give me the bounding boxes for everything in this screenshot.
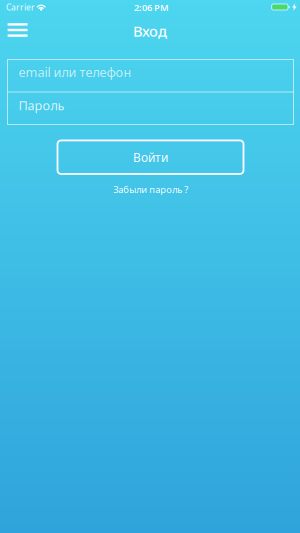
button[interactable]: Пароль bbox=[7, 92, 293, 124]
staticText: email или телефон bbox=[18, 63, 131, 81]
button[interactable]: Забыли пароль ? bbox=[103, 183, 198, 196]
staticText: Забыли пароль ? bbox=[113, 183, 188, 196]
staticText: Вход bbox=[133, 21, 167, 41]
staticText: Войти bbox=[133, 149, 168, 165]
staticText: Carrier bbox=[6, 1, 35, 13]
staticText: 2:06 PM bbox=[134, 1, 169, 14]
button[interactable]: Menu bbox=[0, 14, 35, 45]
staticText: Пароль bbox=[18, 97, 64, 114]
button[interactable]: Войти bbox=[57, 140, 243, 174]
button[interactable]: email или телефон bbox=[7, 59, 293, 91]
